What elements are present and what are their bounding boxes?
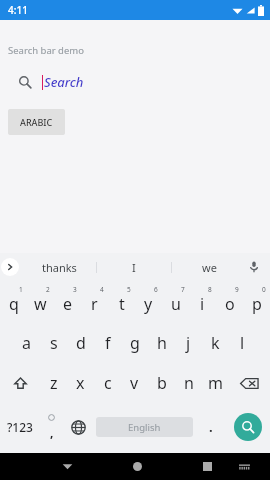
staticText: u bbox=[171, 293, 181, 315]
staticText: y bbox=[144, 293, 153, 315]
staticText: l bbox=[240, 332, 245, 354]
button[interactable]: thanks bbox=[22, 253, 96, 281]
staticText: r bbox=[91, 293, 98, 315]
staticText: v bbox=[130, 372, 139, 394]
button[interactable]: 1 bbox=[0, 281, 27, 323]
staticText: s bbox=[50, 332, 58, 354]
button[interactable]: n bbox=[175, 363, 202, 403]
staticText: z bbox=[50, 372, 58, 394]
staticText: 3 bbox=[73, 285, 77, 294]
staticText: 9 bbox=[235, 285, 239, 294]
staticText: m bbox=[208, 372, 223, 394]
button[interactable]: 6 bbox=[135, 281, 162, 323]
button[interactable]: c bbox=[94, 363, 121, 403]
button[interactable]: f bbox=[94, 323, 121, 363]
button[interactable]: . bbox=[197, 403, 225, 451]
staticText: Search bbox=[44, 73, 84, 91]
button[interactable]: Shift bbox=[0, 363, 40, 403]
button[interactable]: Backspace bbox=[229, 363, 270, 403]
staticText: j bbox=[186, 332, 191, 354]
button[interactable]: j bbox=[175, 323, 202, 363]
staticText: n bbox=[184, 372, 194, 394]
button[interactable]: we bbox=[172, 253, 246, 281]
button[interactable]: Change language bbox=[64, 403, 92, 451]
staticText: 4 bbox=[100, 285, 104, 294]
staticText: d bbox=[76, 332, 86, 354]
staticText: ARABIC bbox=[20, 116, 53, 128]
button[interactable]: Voice input bbox=[244, 257, 264, 277]
staticText: q bbox=[9, 293, 19, 315]
staticText: 7 bbox=[181, 285, 185, 294]
button[interactable]: 5 bbox=[108, 281, 135, 323]
button[interactable]: z bbox=[40, 363, 67, 403]
staticText: 2 bbox=[46, 285, 50, 294]
button[interactable]: s bbox=[40, 323, 67, 363]
staticText: 6 bbox=[154, 285, 158, 294]
button[interactable]: Search bbox=[0, 69, 270, 95]
button[interactable]: v bbox=[121, 363, 148, 403]
button[interactable]: ?123 bbox=[0, 403, 39, 451]
staticText: thanks bbox=[42, 260, 77, 275]
button[interactable]: ARABIC bbox=[8, 109, 65, 135]
staticText: ?123 bbox=[7, 419, 33, 435]
staticText: we bbox=[202, 260, 217, 275]
staticText: i bbox=[200, 293, 205, 315]
button[interactable]: d bbox=[67, 323, 94, 363]
button[interactable]: h bbox=[148, 323, 175, 363]
button[interactable]: Home bbox=[119, 453, 156, 480]
button[interactable]: Keyboard indicator bbox=[226, 453, 263, 480]
button[interactable]: 8 bbox=[189, 281, 216, 323]
staticText: c bbox=[104, 372, 112, 394]
staticText: 5 bbox=[127, 285, 131, 294]
button[interactable]: Emoji and comma bbox=[39, 403, 64, 451]
button[interactable]: m bbox=[202, 363, 229, 403]
staticText: 1 bbox=[19, 285, 23, 294]
staticText: b bbox=[157, 372, 167, 394]
staticText: h bbox=[157, 332, 167, 354]
button[interactable]: b bbox=[148, 363, 175, 403]
staticText: 0 bbox=[262, 285, 266, 294]
button[interactable]: Recents bbox=[189, 453, 226, 480]
button[interactable]: x bbox=[67, 363, 94, 403]
button[interactable]: More suggestions bbox=[1, 258, 19, 276]
button[interactable]: I bbox=[97, 253, 171, 281]
button[interactable]: g bbox=[121, 323, 148, 363]
staticText: f bbox=[105, 332, 111, 354]
staticText: p bbox=[252, 293, 262, 315]
staticText: o bbox=[225, 293, 235, 315]
button[interactable]: Back bbox=[49, 453, 86, 480]
staticText: g bbox=[130, 332, 140, 354]
button[interactable]: Search bbox=[234, 413, 262, 441]
staticText: English bbox=[128, 421, 161, 434]
staticText: 8 bbox=[208, 285, 212, 294]
button[interactable]: 3 bbox=[54, 281, 81, 323]
staticText: 4:11 bbox=[8, 3, 28, 17]
staticText: x bbox=[76, 372, 85, 394]
staticText: I bbox=[132, 260, 136, 275]
button[interactable]: 0 bbox=[243, 281, 270, 323]
button[interactable]: 4 bbox=[81, 281, 108, 323]
staticText: , bbox=[50, 424, 54, 440]
button[interactable]: l bbox=[229, 323, 256, 363]
button[interactable]: k bbox=[202, 323, 229, 363]
button[interactable]: 9 bbox=[216, 281, 243, 323]
button[interactable]: 2 bbox=[27, 281, 54, 323]
button[interactable]: 7 bbox=[162, 281, 189, 323]
staticText: . bbox=[209, 418, 213, 436]
button[interactable]: English bbox=[96, 417, 193, 437]
staticText: t bbox=[119, 293, 125, 315]
staticText: e bbox=[63, 293, 73, 315]
staticText: k bbox=[211, 332, 220, 354]
staticText: w bbox=[34, 293, 47, 315]
staticText: a bbox=[22, 332, 31, 354]
staticText: Search bar demo bbox=[8, 44, 84, 57]
button[interactable]: a bbox=[13, 323, 40, 363]
